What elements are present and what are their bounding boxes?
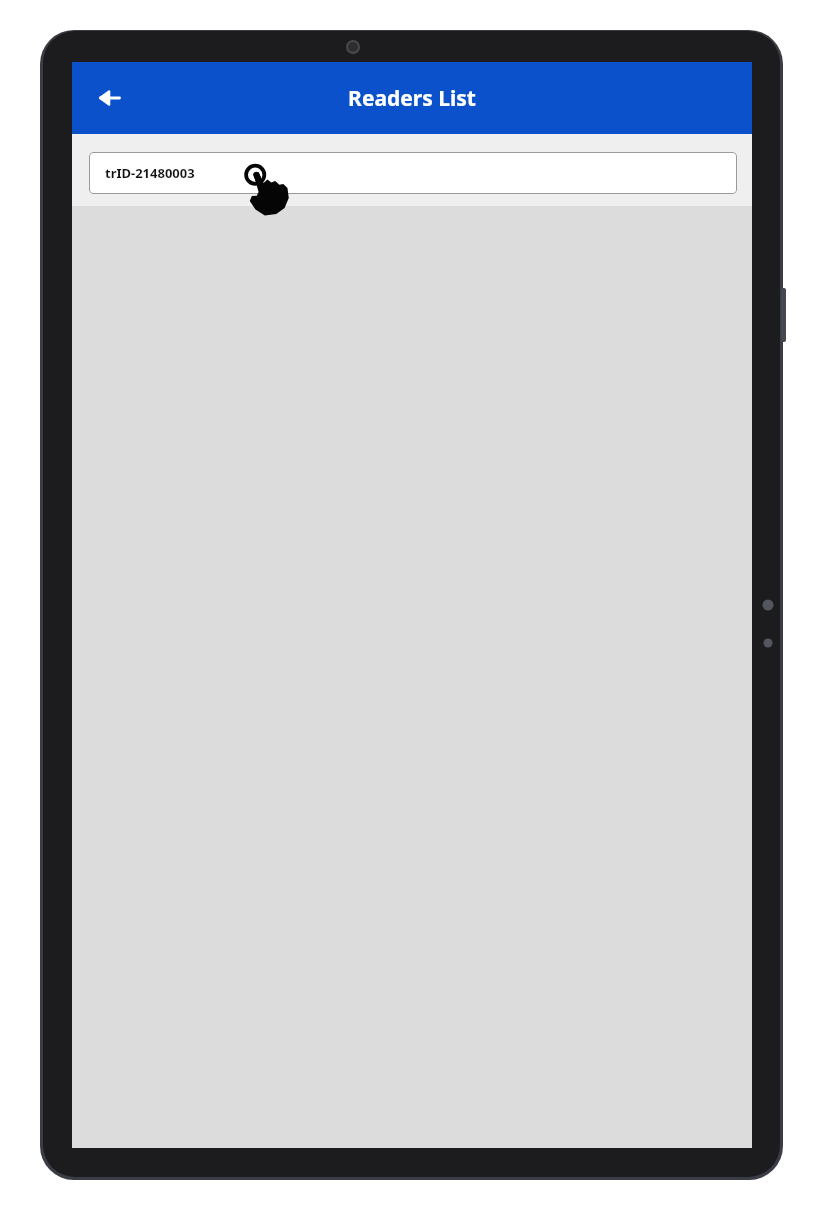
button[interactable]: trID-21480003 <box>89 152 737 194</box>
button[interactable]: Back <box>86 74 134 122</box>
staticText: trID-21480003 <box>105 164 195 182</box>
staticText: Readers List <box>348 84 476 113</box>
